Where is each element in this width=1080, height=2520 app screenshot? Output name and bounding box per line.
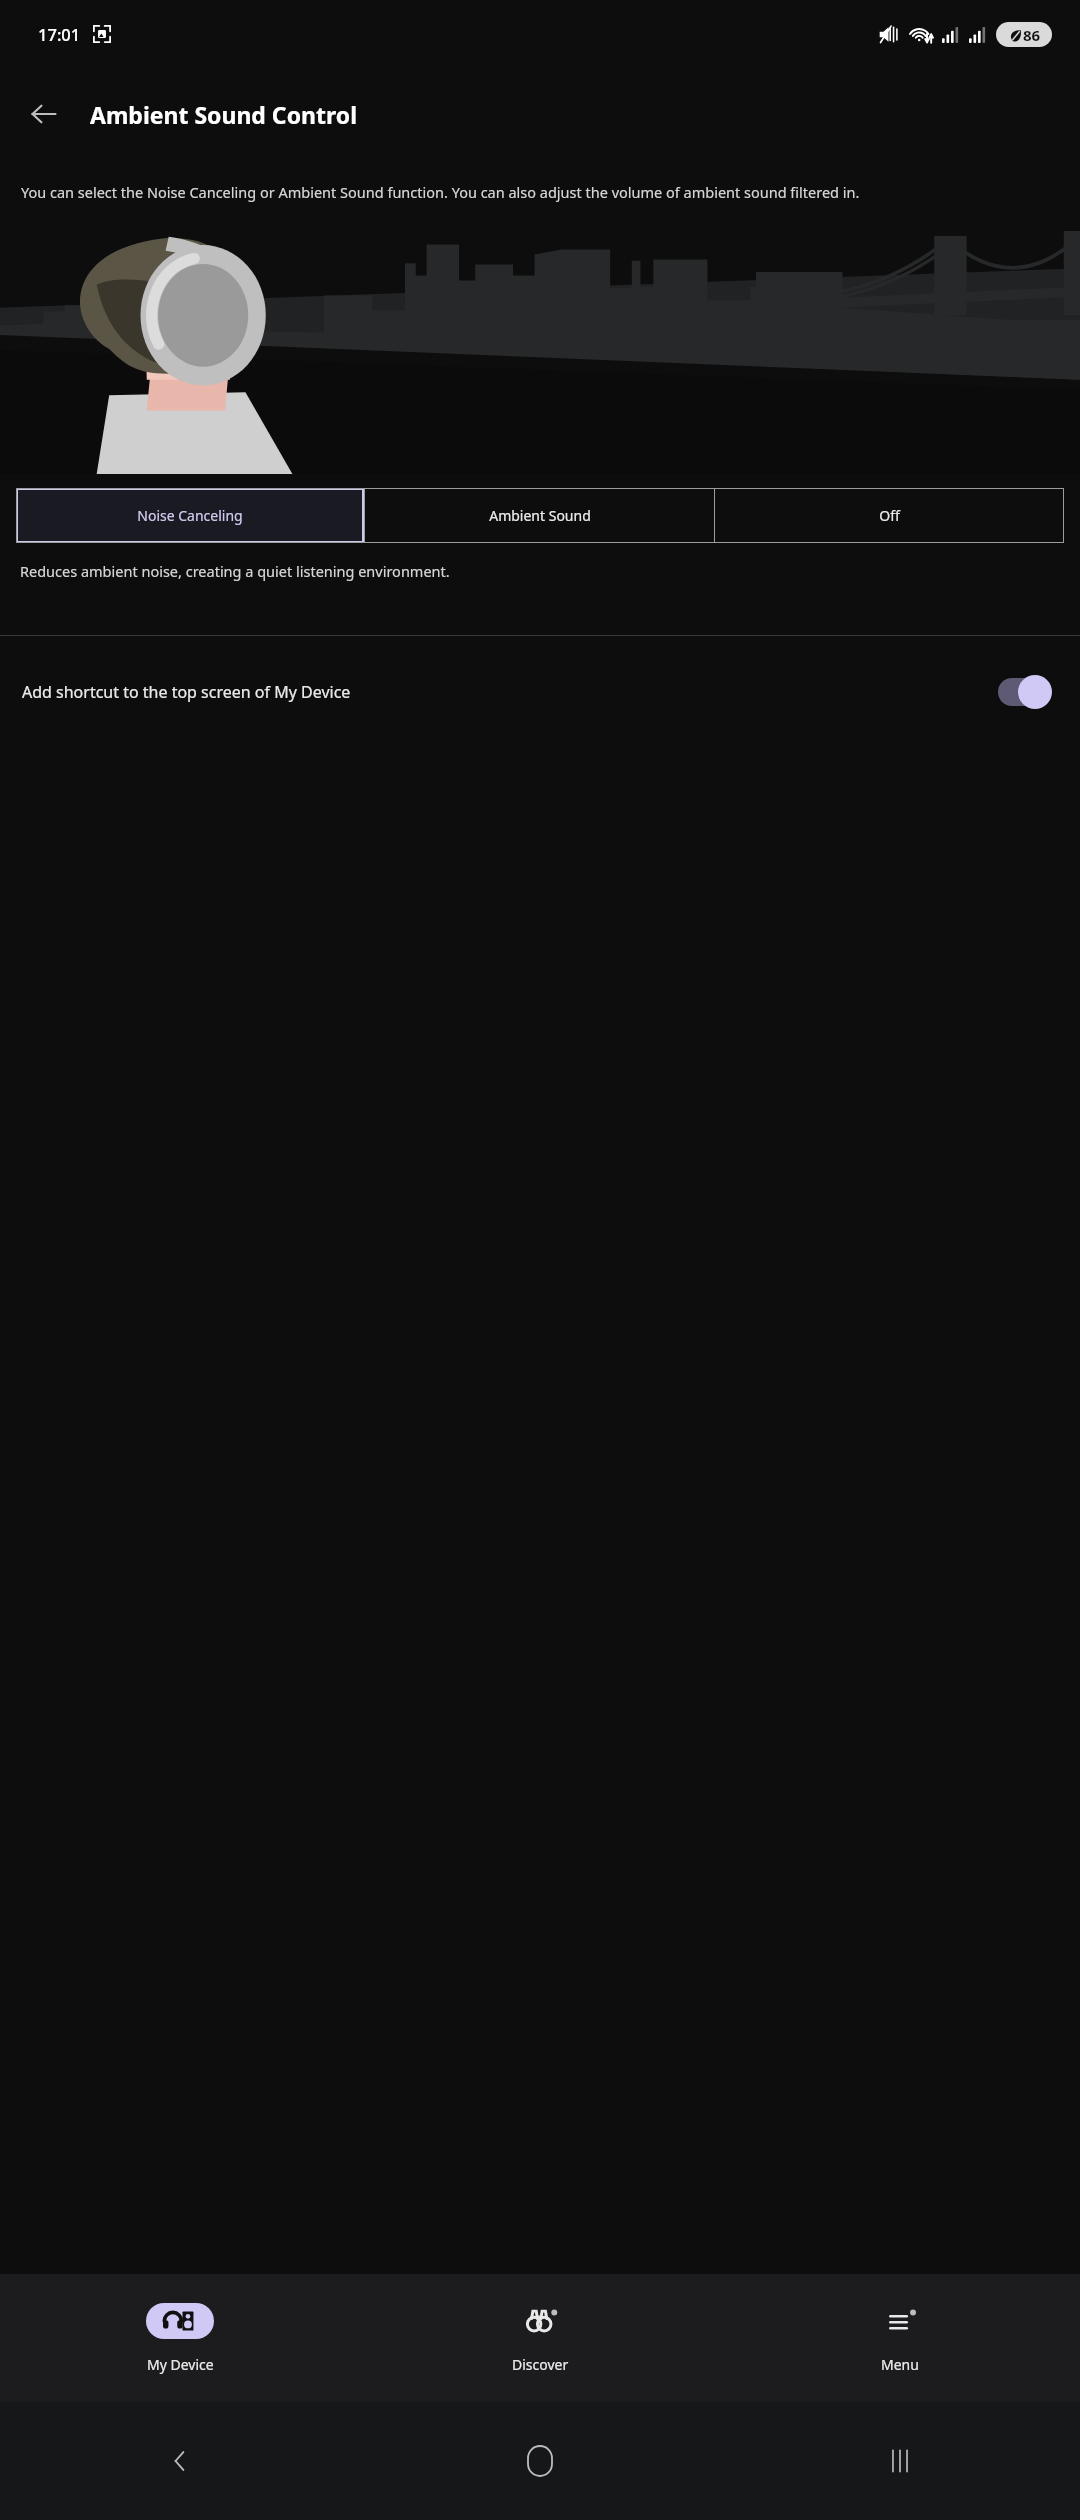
button[interactable]: Off xyxy=(715,488,1064,543)
button[interactable]: Back xyxy=(16,86,72,142)
staticText: Off xyxy=(879,506,900,525)
staticText: 17:01 xyxy=(38,23,81,45)
staticText: Noise Canceling xyxy=(137,506,243,525)
staticText: Ambient Sound Control xyxy=(90,99,357,130)
button[interactable]: My Device xyxy=(0,2274,360,2402)
button[interactable]: Discover xyxy=(360,2274,720,2402)
staticText: Discover xyxy=(512,2355,569,2374)
staticText: My Device xyxy=(147,2355,214,2374)
staticText: Add shortcut to the top screen of My Dev… xyxy=(22,681,998,703)
staticText: Menu xyxy=(881,2355,919,2374)
button[interactable]: Menu xyxy=(720,2274,1080,2402)
button[interactable]: Recents xyxy=(720,2402,1080,2520)
button[interactable]: Back xyxy=(0,2402,360,2520)
staticText: Reduces ambient noise, creating a quiet … xyxy=(20,561,450,581)
button[interactable]: Noise Canceling xyxy=(16,488,364,543)
button[interactable]: Ambient Sound xyxy=(365,488,714,543)
staticText: You can select the Noise Canceling or Am… xyxy=(21,182,860,202)
button[interactable]: Home xyxy=(360,2402,720,2520)
button[interactable]: Add shortcut to the top screen of My Dev… xyxy=(0,636,1080,748)
staticText: Ambient Sound xyxy=(489,506,591,525)
staticText: 86 xyxy=(1023,25,1041,45)
